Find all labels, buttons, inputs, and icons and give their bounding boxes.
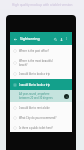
button[interactable]: Where is the post office? [10,45,72,56]
staticText: High quality mockup with a tablet versio… [12,3,73,7]
button[interactable]: Play answer [64,94,69,99]
button[interactable]: I would like to rent a bike [10,102,72,113]
button[interactable]: Account [58,36,64,42]
staticText: Sightseeing [20,36,40,41]
staticText: I would like to book a trip [19,72,50,76]
button[interactable]: Back [12,36,18,42]
staticText: Where is the post office? [19,49,49,53]
button[interactable]: I would like to book a trip [10,79,72,90]
staticText: What City do you recommend? [19,116,57,120]
staticText: I would like to book a trip [19,83,50,87]
staticText: Where is the most beautiful beach? [19,59,53,67]
staticText: All year-round, anywhere between 20 and … [19,92,53,100]
button[interactable]: What City do you recommend? [10,113,72,123]
staticText: Is there a public toilet here? [19,126,53,130]
button[interactable]: More options [64,36,69,41]
button[interactable]: I would like to book a trip [10,69,72,79]
button[interactable]: Search [52,36,58,42]
button[interactable]: Is there a public toilet here? [10,123,72,132]
button[interactable]: Where is the most beautiful beach? [10,56,72,69]
staticText: I would like to rent a bike [19,106,50,110]
